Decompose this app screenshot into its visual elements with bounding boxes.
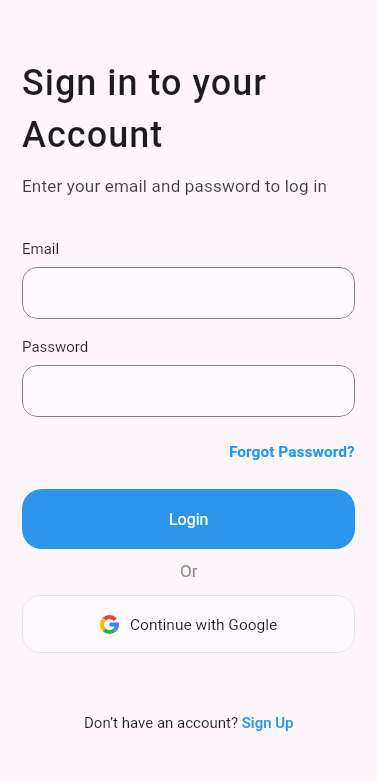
staticText: Login xyxy=(169,510,209,529)
button[interactable] xyxy=(22,365,355,417)
button[interactable]: Continue with Google xyxy=(22,595,355,653)
staticText: Or xyxy=(180,561,198,581)
staticText: Enter your email and password to log in xyxy=(22,176,328,196)
staticText: Continue with Google xyxy=(130,616,278,634)
button[interactable] xyxy=(22,267,355,319)
button[interactable]: Forgot Password? xyxy=(229,443,355,461)
button[interactable]: Don’t have an account? Sign Up xyxy=(84,714,294,732)
staticText: Sign in to your Account xyxy=(22,62,267,156)
staticText: Email xyxy=(22,240,60,258)
staticText: Password xyxy=(22,338,89,356)
button[interactable]: Login xyxy=(22,489,355,549)
